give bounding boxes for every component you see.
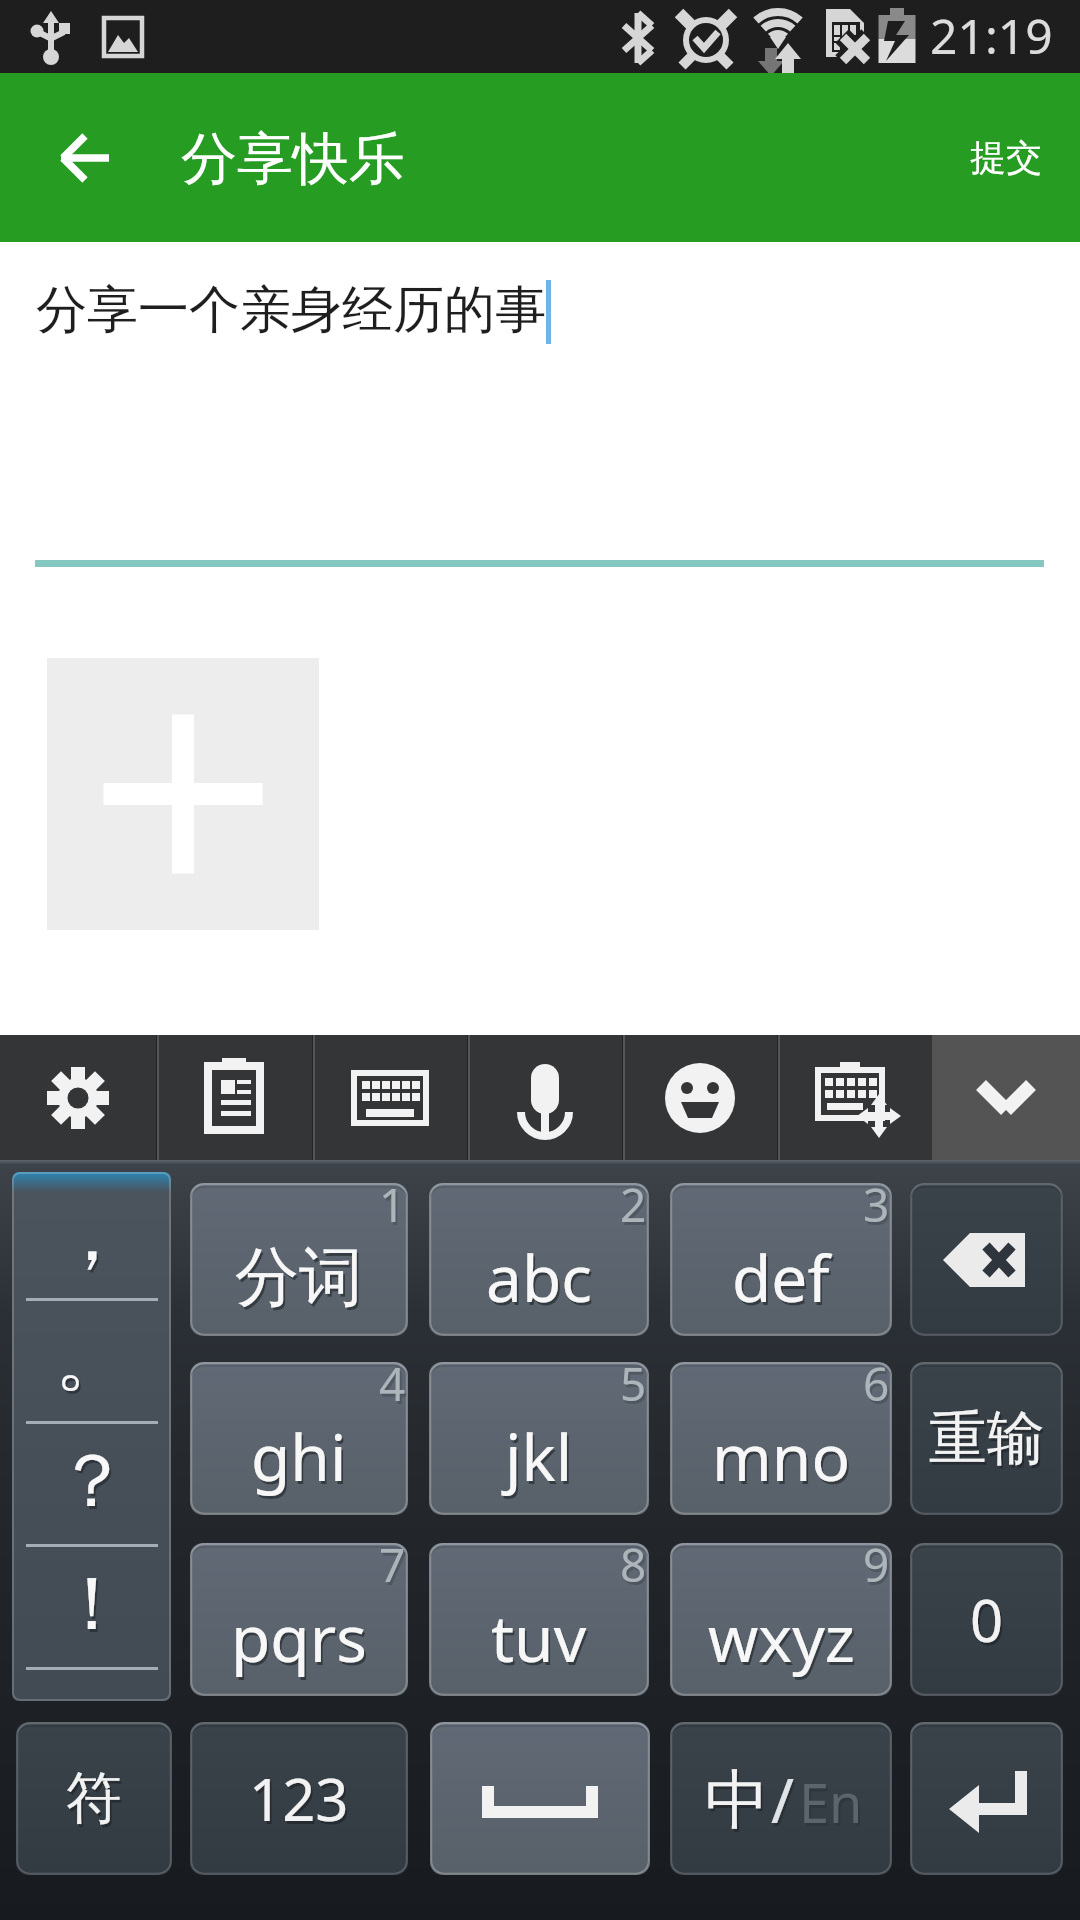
button[interactable]: 123 — [190, 1722, 408, 1875]
staticText: 2 — [620, 1183, 647, 1236]
staticText: 7 — [379, 1543, 406, 1596]
staticText: 9 — [865, 1543, 892, 1599]
button[interactable]: Back — [30, 103, 140, 213]
button[interactable]: pqrs — [190, 1543, 408, 1696]
staticText: 0 — [970, 1580, 1004, 1659]
staticText: ， — [57, 1192, 131, 1285]
staticText: 5 — [622, 1362, 649, 1418]
staticText: 符 — [66, 1763, 122, 1834]
staticText: 7 — [381, 1543, 408, 1599]
button[interactable]: 分享一个亲身经历的事 — [35, 248, 1044, 566]
staticText: def — [732, 1234, 830, 1321]
staticText: 123 — [249, 1759, 349, 1838]
staticText: 重输 — [931, 1405, 1047, 1478]
button[interactable]: mno — [670, 1362, 892, 1515]
button[interactable]: Hide keyboard — [932, 1035, 1080, 1160]
staticText: 1 — [381, 1183, 408, 1239]
staticText: jkl — [505, 1413, 573, 1500]
staticText: 3 — [865, 1183, 892, 1239]
staticText: mno — [714, 1416, 853, 1503]
staticText: 8 — [620, 1543, 647, 1596]
staticText: ！ — [57, 1561, 131, 1654]
button[interactable]: Voice input — [467, 1035, 622, 1160]
button[interactable]: 符 — [16, 1722, 172, 1875]
staticText: 分享一个亲身经历的事 — [36, 278, 546, 342]
button[interactable]: 提交 — [934, 111, 1080, 204]
staticText: En — [801, 1768, 865, 1842]
staticText: def — [734, 1237, 832, 1324]
button[interactable]: abc — [429, 1183, 649, 1336]
staticText: mno — [712, 1413, 851, 1500]
staticText: 2 — [622, 1183, 649, 1239]
staticText: tuv — [491, 1594, 587, 1681]
staticText: 分词 — [235, 1237, 363, 1318]
button[interactable]: Space — [430, 1722, 650, 1875]
button[interactable]: Clipboard — [156, 1035, 312, 1160]
staticText: / — [773, 1760, 797, 1844]
staticText: 6 — [863, 1362, 890, 1415]
staticText: 1 — [379, 1183, 406, 1236]
staticText: 中 — [707, 1763, 771, 1844]
staticText: 3 — [863, 1183, 890, 1236]
button[interactable]: ？ — [12, 1424, 171, 1547]
button[interactable]: ！ — [12, 1547, 171, 1670]
staticText: ？ — [57, 1438, 131, 1531]
button[interactable]: ghi — [190, 1362, 408, 1515]
staticText: 分享快乐 — [181, 124, 405, 195]
staticText: 重输 — [929, 1402, 1045, 1475]
button[interactable]: Chinese English toggle — [670, 1722, 892, 1875]
staticText: 4 — [381, 1362, 408, 1418]
staticText: wxyz — [708, 1594, 855, 1681]
staticText: 5 — [620, 1362, 647, 1415]
staticText: 分词 — [237, 1240, 365, 1321]
button[interactable]: 0 — [910, 1543, 1063, 1696]
button[interactable]: Delete — [910, 1183, 1063, 1336]
button[interactable]: Emoji — [622, 1035, 777, 1160]
button[interactable]: 。 — [12, 1301, 171, 1424]
staticText: ghi — [253, 1416, 349, 1503]
staticText: 8 — [622, 1543, 649, 1599]
button[interactable]: Add photo — [47, 658, 319, 930]
staticText: 4 — [379, 1362, 406, 1415]
staticText: 。 — [55, 1312, 129, 1405]
button[interactable]: 分词 — [190, 1183, 408, 1336]
staticText: ？ — [55, 1435, 129, 1528]
staticText: jkl — [507, 1416, 575, 1503]
button[interactable]: wxyz — [670, 1543, 892, 1696]
button[interactable]: jkl — [429, 1362, 649, 1515]
staticText: ， — [55, 1189, 129, 1282]
staticText: ghi — [251, 1413, 347, 1500]
staticText: 6 — [865, 1362, 892, 1418]
button[interactable]: def — [670, 1183, 892, 1336]
button[interactable]: Enter — [910, 1722, 1063, 1875]
staticText: abc — [486, 1234, 592, 1321]
staticText: 0 — [972, 1583, 1006, 1662]
staticText: 123 — [251, 1762, 351, 1841]
staticText: 中 — [705, 1760, 769, 1841]
button[interactable]: Settings — [0, 1035, 156, 1160]
staticText: abc — [488, 1237, 594, 1324]
staticText: ！ — [55, 1558, 129, 1651]
staticText: wxyz — [710, 1597, 857, 1684]
staticText: 。 — [57, 1315, 131, 1408]
button[interactable]: tuv — [429, 1543, 649, 1696]
staticText: En — [799, 1765, 863, 1839]
button[interactable]: 重输 — [910, 1362, 1063, 1515]
staticText: 符 — [68, 1766, 124, 1837]
button[interactable]: Keyboard layout — [312, 1035, 467, 1160]
staticText: pqrs — [231, 1594, 367, 1681]
staticText: pqrs — [233, 1597, 369, 1684]
button[interactable]: Floating keyboard — [777, 1035, 932, 1160]
staticText: 21:19 — [930, 3, 1053, 68]
staticText: 9 — [863, 1543, 890, 1596]
staticText: tuv — [493, 1597, 589, 1684]
staticText: / — [771, 1757, 795, 1841]
staticText: 提交 — [970, 135, 1042, 180]
button[interactable]: ， — [12, 1178, 171, 1301]
